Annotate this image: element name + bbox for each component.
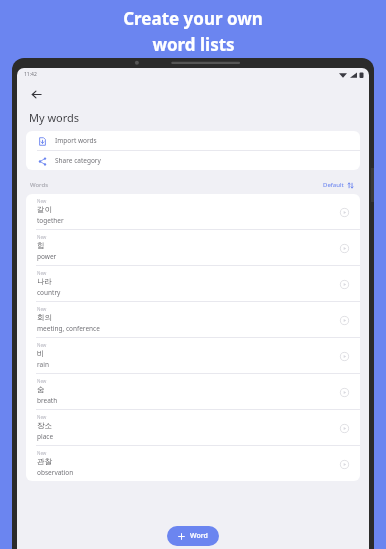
button[interactable]: Word — [167, 526, 219, 546]
staticText: Word — [190, 531, 208, 541]
button[interactable]: New — [26, 266, 360, 301]
staticText: 장소 — [37, 421, 52, 430]
button[interactable]: New — [26, 302, 360, 337]
staticText: New — [37, 234, 47, 240]
staticText: 비 — [37, 349, 45, 358]
staticText: 숨 — [37, 385, 45, 394]
staticText: power — [37, 252, 57, 261]
staticText: 회의 — [37, 313, 52, 322]
staticText: New — [37, 342, 47, 348]
staticText: rain — [37, 360, 49, 369]
button[interactable]: New — [26, 374, 360, 409]
staticText: observation — [37, 468, 74, 477]
staticText: word lists — [152, 33, 235, 56]
staticText: New — [37, 414, 47, 420]
button[interactable]: Import words — [26, 131, 360, 150]
staticText: Words — [30, 181, 49, 189]
staticText: together — [37, 216, 64, 225]
button[interactable]: New — [26, 338, 360, 373]
button[interactable]: Play — [337, 205, 351, 219]
staticText: 같이 — [37, 205, 52, 214]
staticText: New — [37, 270, 47, 276]
button[interactable]: Default — [321, 179, 356, 191]
staticText: My words — [29, 110, 80, 125]
staticText: Create your own — [123, 7, 263, 30]
button[interactable]: Play — [337, 241, 351, 255]
staticText: New — [37, 450, 47, 456]
button[interactable]: Play — [337, 349, 351, 363]
staticText: 나라 — [37, 277, 52, 286]
staticText: Share category — [55, 156, 101, 165]
button[interactable]: Play — [337, 457, 351, 471]
staticText: country — [37, 288, 61, 297]
button[interactable]: Back — [25, 83, 47, 105]
button[interactable]: New — [26, 410, 360, 445]
button[interactable]: Play — [337, 313, 351, 327]
button[interactable]: Play — [337, 421, 351, 435]
button[interactable]: New — [26, 194, 360, 229]
button[interactable]: New — [26, 446, 360, 481]
button[interactable]: Share category — [26, 151, 360, 170]
staticText: Default — [323, 181, 344, 189]
staticText: meeting, conference — [37, 324, 100, 333]
button[interactable]: New — [26, 230, 360, 265]
staticText: New — [37, 198, 47, 204]
staticText: place — [37, 432, 54, 441]
staticText: breath — [37, 396, 58, 405]
button[interactable]: Play — [337, 277, 351, 291]
staticText: 관찰 — [37, 457, 52, 466]
staticText: 힘 — [37, 241, 45, 250]
staticText: Import words — [55, 136, 97, 145]
staticText: New — [37, 306, 47, 312]
staticText: New — [37, 378, 47, 384]
button[interactable]: Play — [337, 385, 351, 399]
staticText: 11:42 — [24, 71, 37, 78]
